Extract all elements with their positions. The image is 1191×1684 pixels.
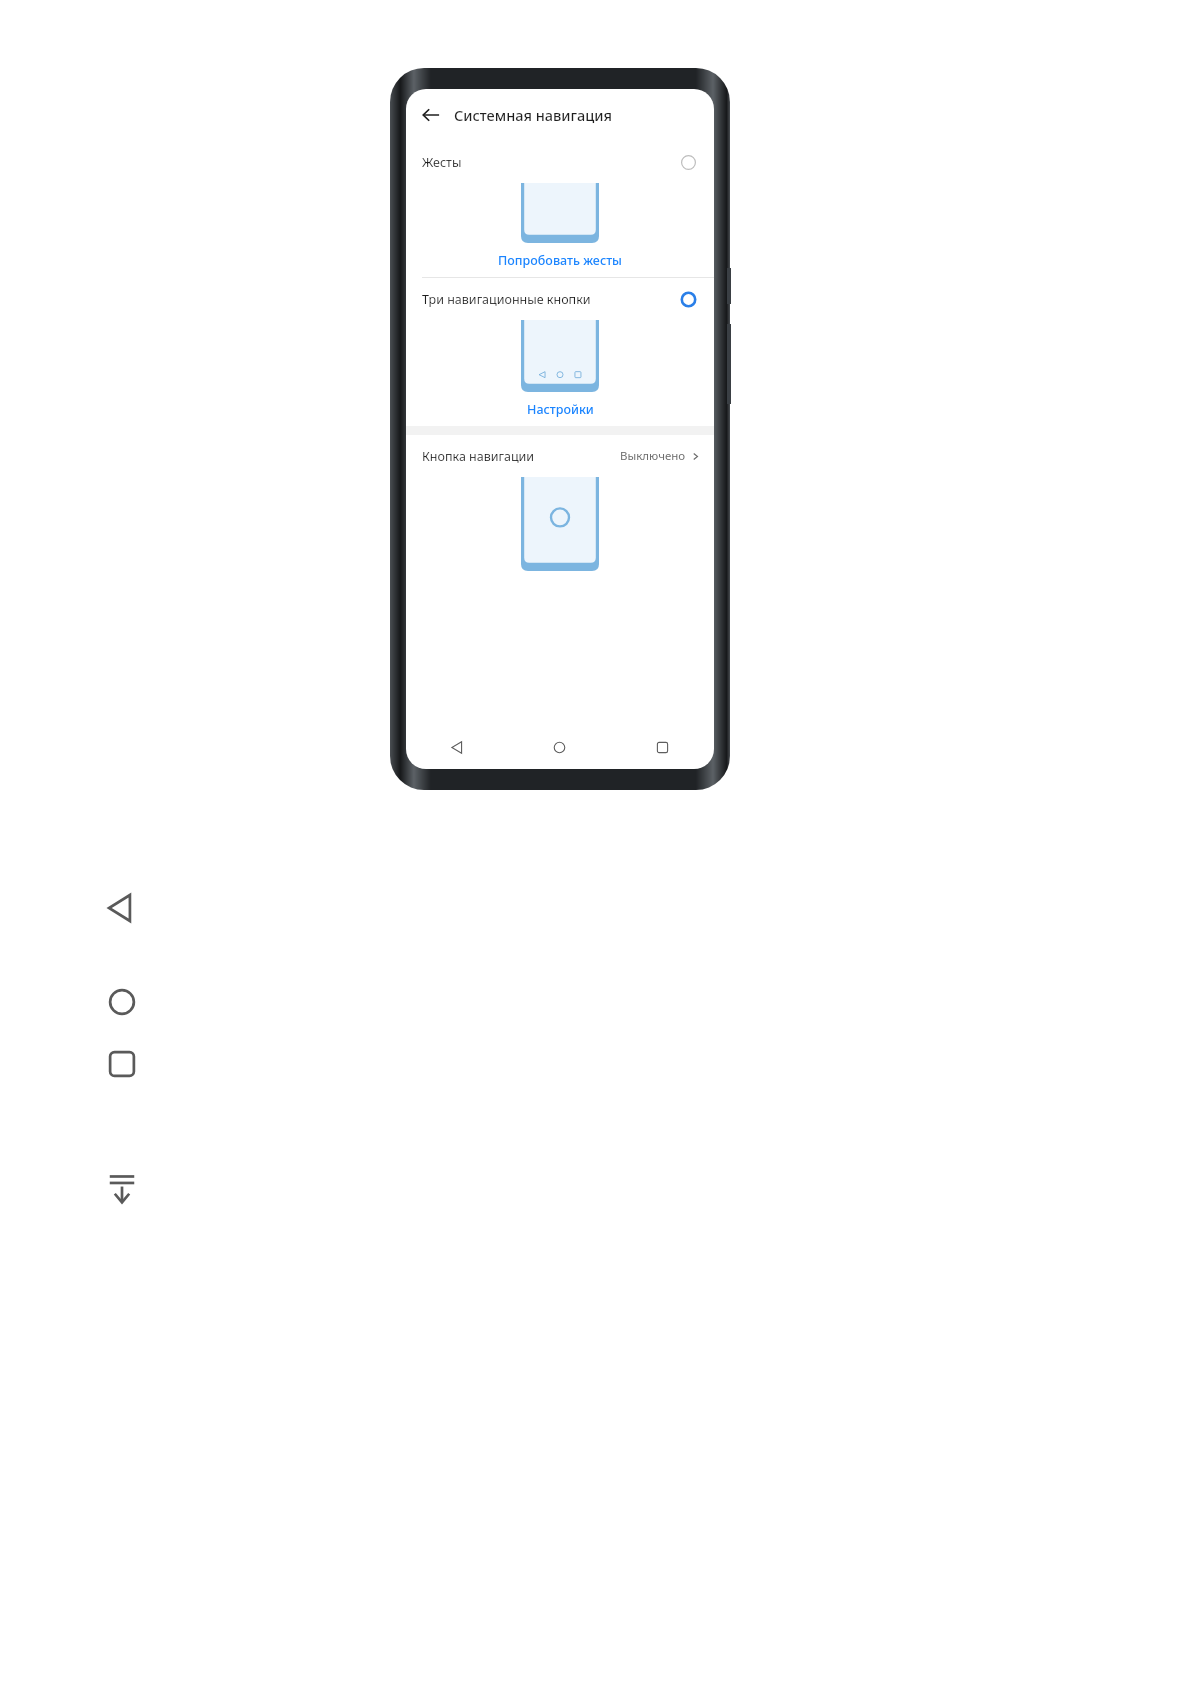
button[interactable]: Попробовать жесты — [406, 243, 714, 277]
button[interactable]: Три навигационные кнопки — [406, 278, 714, 426]
button[interactable]: Selected — [678, 289, 698, 309]
staticText: Системная навигация — [454, 105, 613, 125]
staticText: Три навигационные кнопки — [422, 291, 591, 308]
button[interactable]: Back — [420, 104, 442, 126]
button[interactable]: Recents — [611, 725, 714, 769]
button[interactable]: Back — [406, 725, 508, 769]
button[interactable]: Not selected — [678, 152, 698, 172]
button[interactable]: Hide navigation button — [104, 1170, 140, 1206]
button[interactable]: Home — [508, 725, 611, 769]
button[interactable]: Back — [104, 890, 140, 926]
staticText: Попробовать жесты — [498, 252, 622, 269]
button[interactable]: Жесты — [406, 141, 714, 277]
staticText: Жесты — [422, 154, 462, 171]
button[interactable]: Настройки — [406, 392, 714, 426]
staticText: Кнопка навигации — [422, 448, 535, 465]
button[interactable]: Home — [104, 984, 140, 1020]
button[interactable]: Кнопка навигации — [406, 435, 714, 571]
button[interactable]: Recents — [104, 1046, 140, 1082]
staticText: Выключено — [620, 448, 686, 464]
staticText: Настройки — [527, 401, 594, 418]
